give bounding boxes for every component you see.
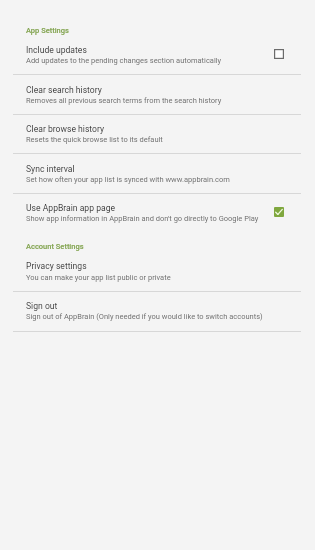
staticText: Sync interval [26, 164, 75, 174]
other: Include updates checkbox [274, 49, 284, 59]
button[interactable]: Include updates [0, 34, 315, 75]
staticText: Privacy settings [26, 261, 87, 271]
button[interactable]: Sign out [0, 292, 315, 332]
staticText: Clear browse history [26, 124, 105, 134]
staticText: Show app information in AppBrain and don… [26, 214, 259, 223]
other: Use AppBrain app page checkbox [274, 207, 284, 217]
staticText: Use AppBrain app page [26, 203, 116, 213]
staticText: Resets the quick browse list to its defa… [26, 135, 163, 144]
staticText: Sign out [26, 301, 58, 311]
button[interactable]: Clear browse history [0, 115, 315, 154]
button[interactable]: Sync interval [0, 154, 315, 194]
button[interactable]: Privacy settings [0, 251, 315, 292]
button[interactable]: Clear search history [0, 75, 315, 115]
staticText: Sign out of AppBrain (Only needed if you… [26, 312, 263, 321]
staticText: Account Settings [26, 242, 84, 251]
staticText: App Settings [26, 26, 69, 35]
staticText: Clear search history [26, 85, 102, 95]
staticText: You can make your app list public or pri… [26, 273, 171, 282]
button[interactable]: Use AppBrain app page [0, 194, 315, 233]
staticText: Add updates to the pending changes secti… [26, 56, 222, 65]
staticText: Include updates [26, 45, 87, 55]
staticText: Removes all previous search terms from t… [26, 96, 222, 105]
staticText: Set how often your app list is synced wi… [26, 175, 230, 184]
